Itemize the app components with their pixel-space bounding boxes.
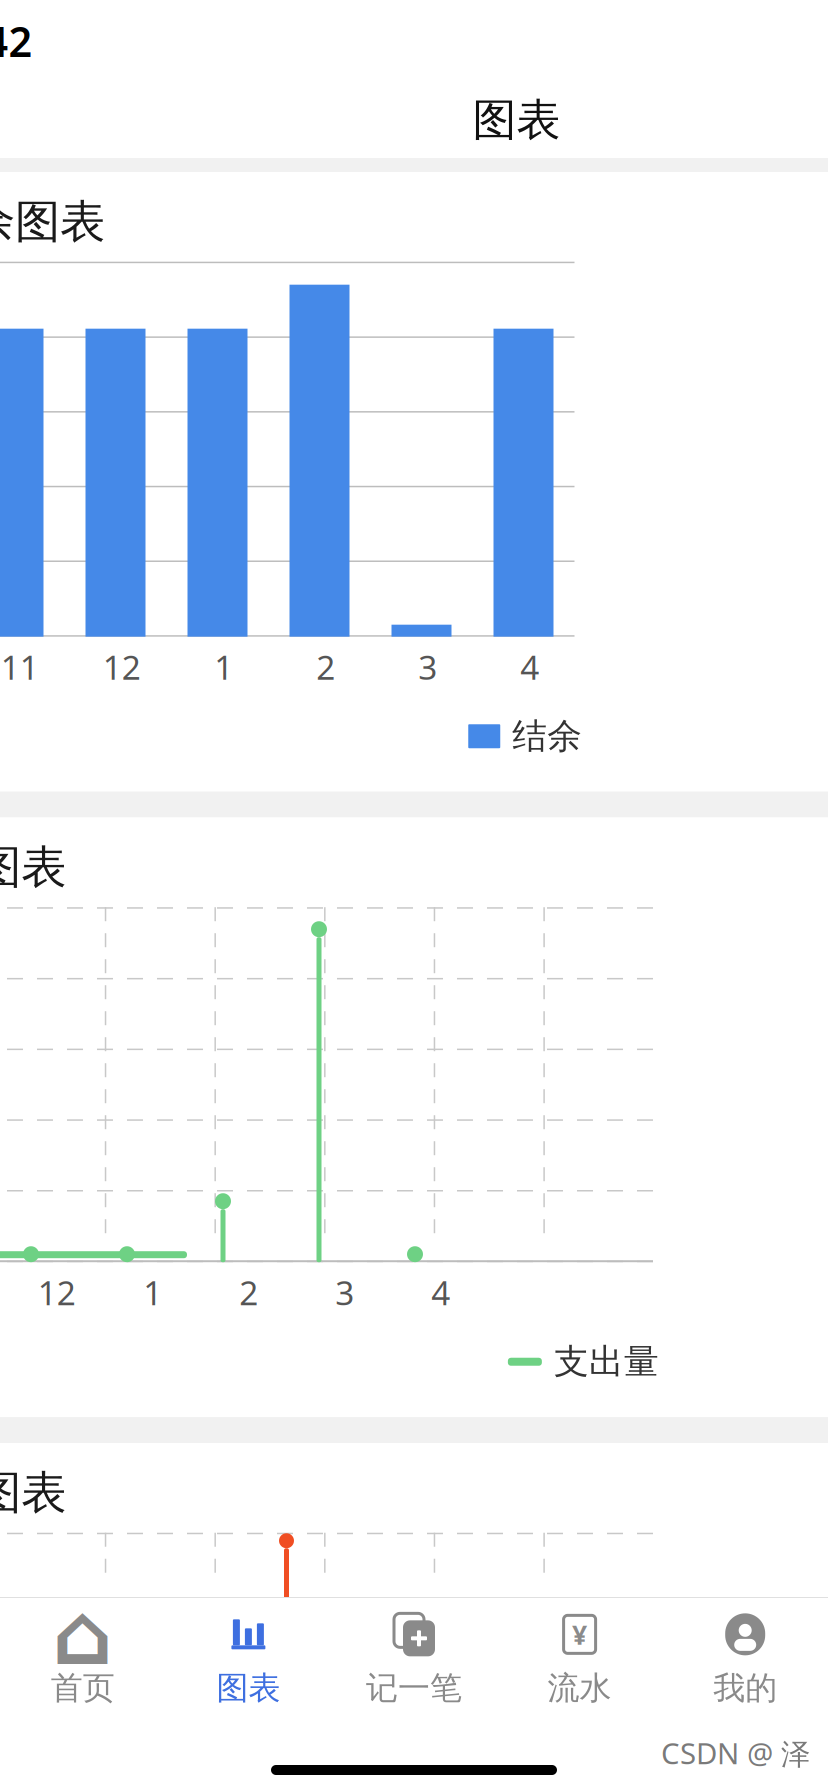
- staticText: 12: [103, 645, 141, 689]
- staticText: 2: [239, 1270, 258, 1314]
- staticText: 支出量: [554, 1340, 659, 1383]
- staticText: 1: [214, 645, 233, 689]
- staticText: 7:42: [0, 14, 32, 68]
- staticText: 我的: [713, 1668, 777, 1708]
- button[interactable]: ¥: [497, 1596, 662, 1716]
- staticText: 11: [1, 645, 39, 689]
- staticText: 4: [431, 1270, 450, 1314]
- staticText: 记一笔: [366, 1668, 462, 1708]
- staticText: 1: [143, 1270, 162, 1314]
- button[interactable]: ⌂: [0, 1596, 166, 1716]
- staticText: 3: [335, 1270, 354, 1314]
- staticText: 2: [316, 645, 335, 689]
- staticText: ⌂: [52, 1586, 113, 1683]
- staticText: 结余: [512, 715, 582, 757]
- staticText: CSDN @ 泽: [661, 1733, 810, 1772]
- staticText: 支出图表: [0, 839, 66, 895]
- staticText: 结余图表: [0, 194, 105, 250]
- staticText: 首页: [51, 1668, 115, 1708]
- staticText: 图表: [216, 1668, 280, 1708]
- button[interactable]: 图表: [166, 1596, 331, 1716]
- staticText: 4: [520, 645, 539, 689]
- staticText: 流水: [548, 1668, 612, 1708]
- staticText: ¥: [572, 1617, 587, 1652]
- button[interactable]: 我的: [662, 1596, 828, 1716]
- button[interactable]: 记一笔: [331, 1596, 497, 1716]
- staticText: 图表: [472, 93, 560, 147]
- staticText: 3: [418, 645, 437, 689]
- staticText: 12: [38, 1270, 76, 1314]
- staticText: 收入图表: [0, 1465, 66, 1521]
